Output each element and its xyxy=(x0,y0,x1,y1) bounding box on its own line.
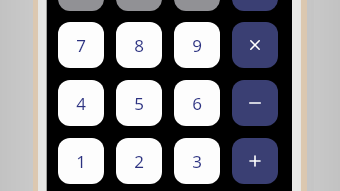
button[interactable]: Subtract xyxy=(232,80,278,126)
staticText: 7 xyxy=(76,34,86,57)
button[interactable]: 5 xyxy=(116,80,162,126)
button[interactable]: Plus minus xyxy=(116,0,162,11)
staticText: 9 xyxy=(192,34,202,57)
button[interactable]: Multiply xyxy=(232,22,278,68)
button[interactable]: 9 xyxy=(174,22,220,68)
button[interactable]: 8 xyxy=(116,22,162,68)
button[interactable]: 2 xyxy=(116,138,162,184)
staticText: 3 xyxy=(192,150,202,173)
staticText: 5 xyxy=(134,92,144,115)
button[interactable]: Add xyxy=(232,138,278,184)
button[interactable]: Divide xyxy=(232,0,278,11)
button[interactable]: 3 xyxy=(174,138,220,184)
staticText: 1 xyxy=(76,150,86,173)
button[interactable]: 1 xyxy=(58,138,104,184)
button[interactable]: 4 xyxy=(58,80,104,126)
staticText: 4 xyxy=(76,92,86,115)
button[interactable]: 6 xyxy=(174,80,220,126)
button[interactable]: Clear xyxy=(58,0,104,11)
button[interactable]: Percent xyxy=(174,0,220,11)
staticText: 2 xyxy=(134,150,144,173)
staticText: 8 xyxy=(134,34,144,57)
button[interactable]: 7 xyxy=(58,22,104,68)
staticText: 6 xyxy=(192,92,202,115)
